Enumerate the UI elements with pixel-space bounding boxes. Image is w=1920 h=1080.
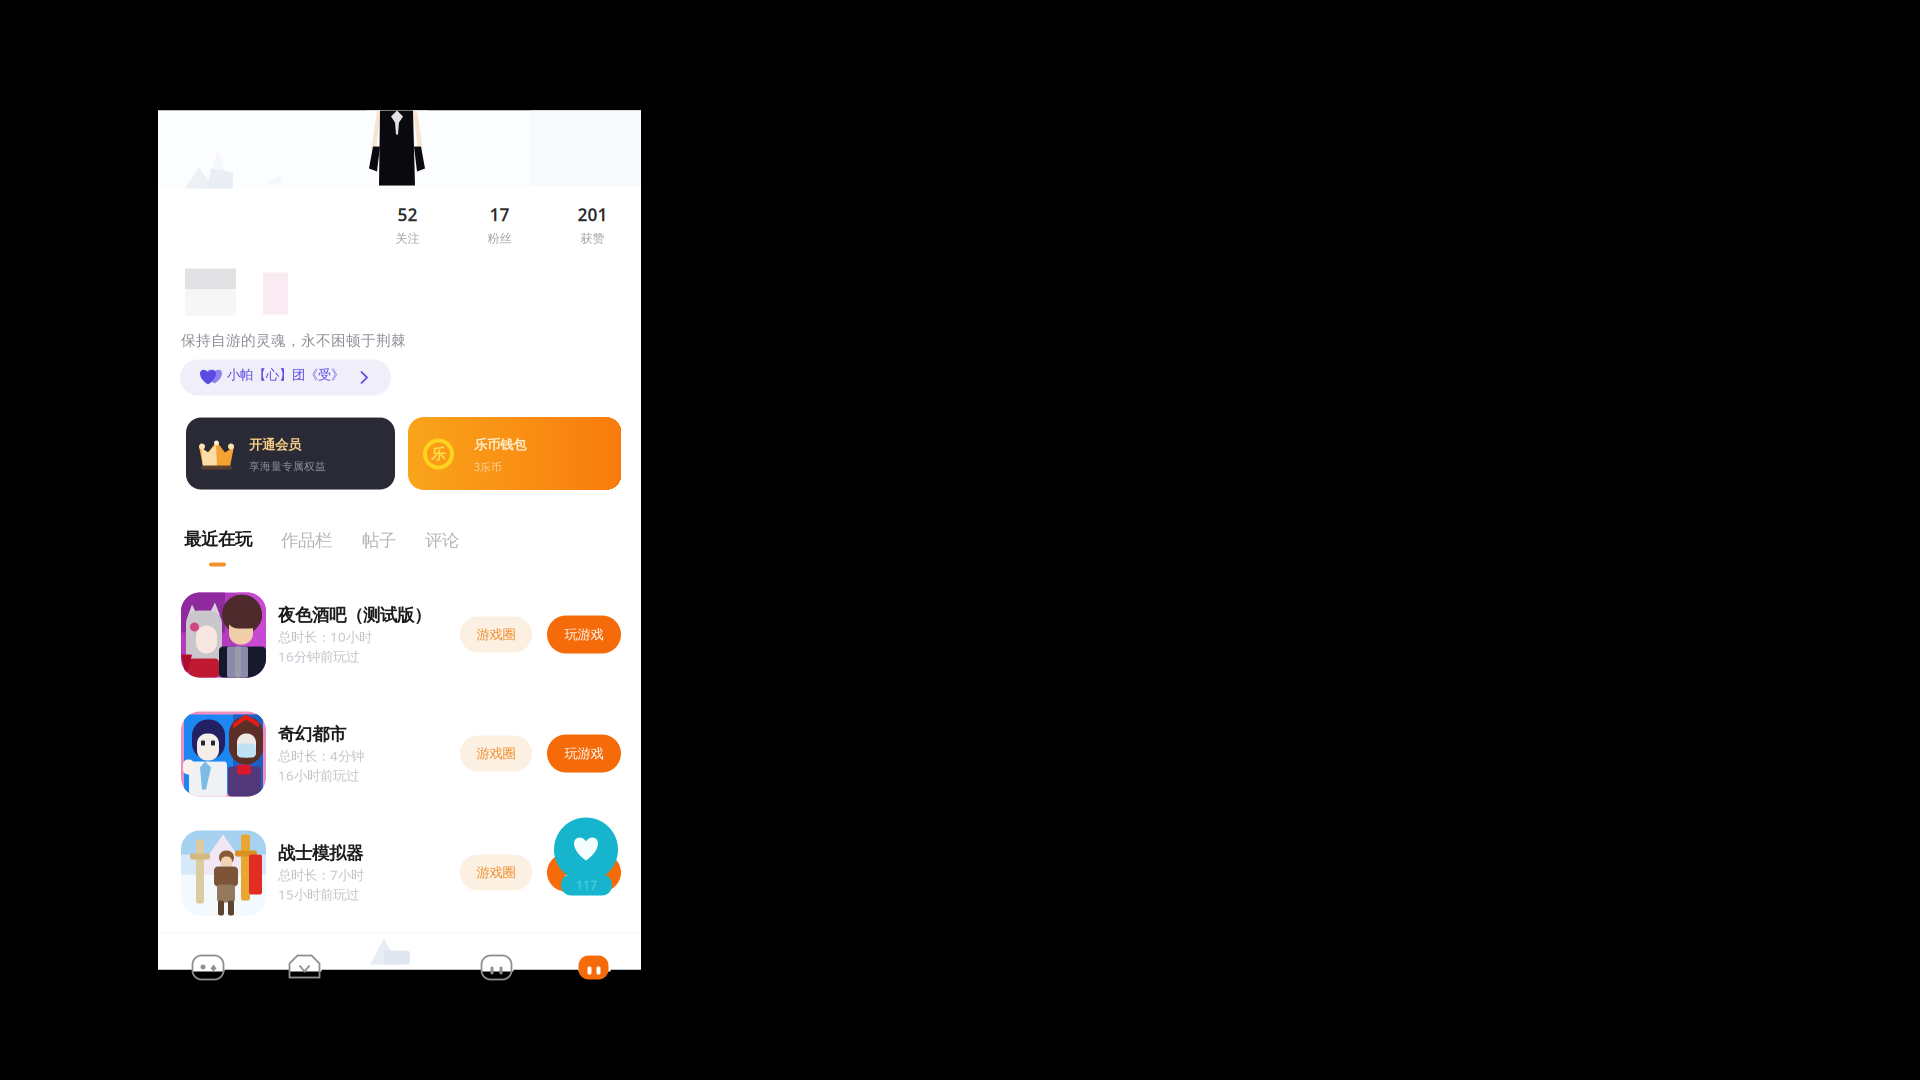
staticText: 16小时前玩过 — [278, 766, 359, 784]
staticText: 总时长：4分钟 — [278, 747, 364, 764]
staticText: 作品栏 — [281, 530, 332, 551]
button[interactable]: 玩游戏 — [547, 615, 621, 653]
button[interactable]: 游戏圈 — [460, 616, 532, 652]
staticText: 最近在玩 — [184, 528, 252, 550]
staticText: 玩游戏 — [564, 745, 603, 762]
staticText: 玩游戏 — [564, 626, 603, 643]
staticText: 52 — [397, 203, 417, 226]
staticText: 乐 — [431, 445, 446, 463]
staticText: 玩游戏 — [564, 864, 603, 881]
staticText: 关注 — [395, 231, 419, 246]
staticText: 117 — [576, 877, 597, 893]
staticText: 15小时前玩过 — [278, 885, 359, 903]
staticText: 战士模拟器 — [278, 842, 363, 864]
button[interactable]: 玩游戏 — [547, 853, 621, 891]
button[interactable]: 乐 — [408, 417, 621, 489]
button[interactable]: 开通会员 — [186, 417, 395, 489]
button[interactable]: Profile — [578, 959, 610, 975]
staticText: 游戏圈 — [476, 745, 515, 762]
staticText: 帖子 — [362, 530, 396, 551]
button[interactable]: Messages — [481, 959, 513, 975]
button[interactable]: Games — [192, 959, 224, 975]
staticText: 小帕【心】团《受》 — [227, 366, 344, 383]
button[interactable]: 17 — [463, 201, 535, 247]
button[interactable]: 游戏圈 — [460, 735, 532, 771]
button[interactable]: Discover — [289, 959, 321, 975]
button[interactable]: 小帕【心】团《受》 — [180, 359, 391, 395]
staticText: 夜色酒吧（测试版） — [278, 604, 431, 626]
staticText: 总时长：7小时 — [278, 866, 364, 883]
button[interactable]: 评论 — [425, 529, 463, 551]
staticText: 201 — [577, 203, 607, 226]
staticText: 游戏圈 — [476, 626, 515, 643]
button[interactable]: Like — [554, 810, 618, 888]
button[interactable]: 201 — [556, 201, 628, 247]
staticText: 享海量专属权益 — [249, 460, 326, 473]
staticText: 游戏圈 — [476, 864, 515, 881]
staticText: 获赞 — [580, 231, 604, 246]
staticText: 奇幻都市 — [278, 723, 346, 745]
button[interactable]: 帖子 — [362, 529, 400, 551]
button[interactable]: 最近在玩 — [182, 528, 254, 552]
button[interactable]: 作品栏 — [281, 529, 336, 551]
button[interactable]: 52 — [371, 201, 443, 247]
staticText: 粉丝 — [487, 231, 511, 246]
staticText: 17 — [489, 203, 509, 226]
staticText: 3乐币 — [474, 460, 502, 474]
staticText: 乐币钱包 — [474, 436, 526, 453]
staticText: 总时长：10小时 — [278, 628, 372, 645]
staticText: 评论 — [425, 530, 459, 551]
button[interactable]: 玩游戏 — [547, 734, 621, 772]
staticText: 保持自游的灵魂，永不困顿于荆棘 — [181, 331, 406, 349]
button[interactable]: 游戏圈 — [460, 854, 532, 890]
staticText: 16分钟前玩过 — [278, 647, 359, 665]
staticText: 开通会员 — [249, 436, 301, 453]
